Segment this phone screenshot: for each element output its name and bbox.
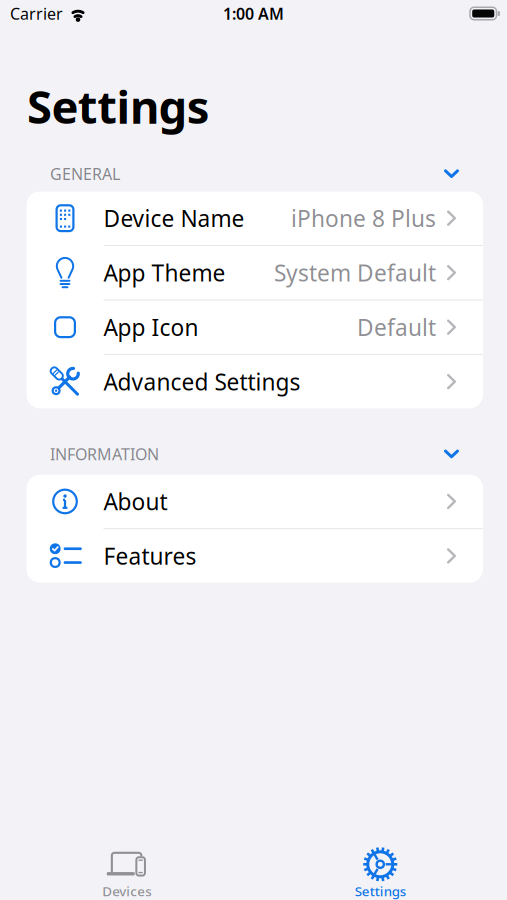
staticText: Features: [103, 541, 196, 571]
staticText: INFORMATION: [50, 443, 159, 465]
staticText: Settings: [355, 882, 406, 900]
staticText: Carrier: [10, 3, 63, 24]
staticText: Default: [357, 312, 436, 342]
staticText: App Theme: [103, 258, 225, 288]
button[interactable]: Devices: [0, 846, 253, 900]
button[interactable]: Settings: [253, 846, 507, 900]
button[interactable]: Features: [26, 529, 483, 583]
staticText: iPhone 8 Plus: [291, 203, 436, 233]
staticText: About: [103, 486, 167, 516]
button[interactable]: App Theme: [26, 246, 483, 299]
button[interactable]: About: [26, 475, 483, 528]
button[interactable]: Advanced Settings: [26, 355, 483, 408]
staticText: GENERAL: [50, 163, 120, 184]
button[interactable]: Device Name: [26, 191, 483, 245]
staticText: 1:00 AM: [223, 3, 284, 24]
button[interactable]: App Icon: [26, 300, 483, 354]
button[interactable]: Collapse section: [444, 165, 459, 182]
staticText: Advanced Settings: [103, 367, 300, 397]
button[interactable]: Collapse section: [444, 446, 459, 463]
staticText: App Icon: [103, 312, 198, 342]
staticText: Settings: [27, 76, 210, 136]
staticText: Devices: [102, 882, 151, 900]
staticText: Device Name: [103, 203, 244, 233]
staticText: System Default: [274, 258, 436, 288]
